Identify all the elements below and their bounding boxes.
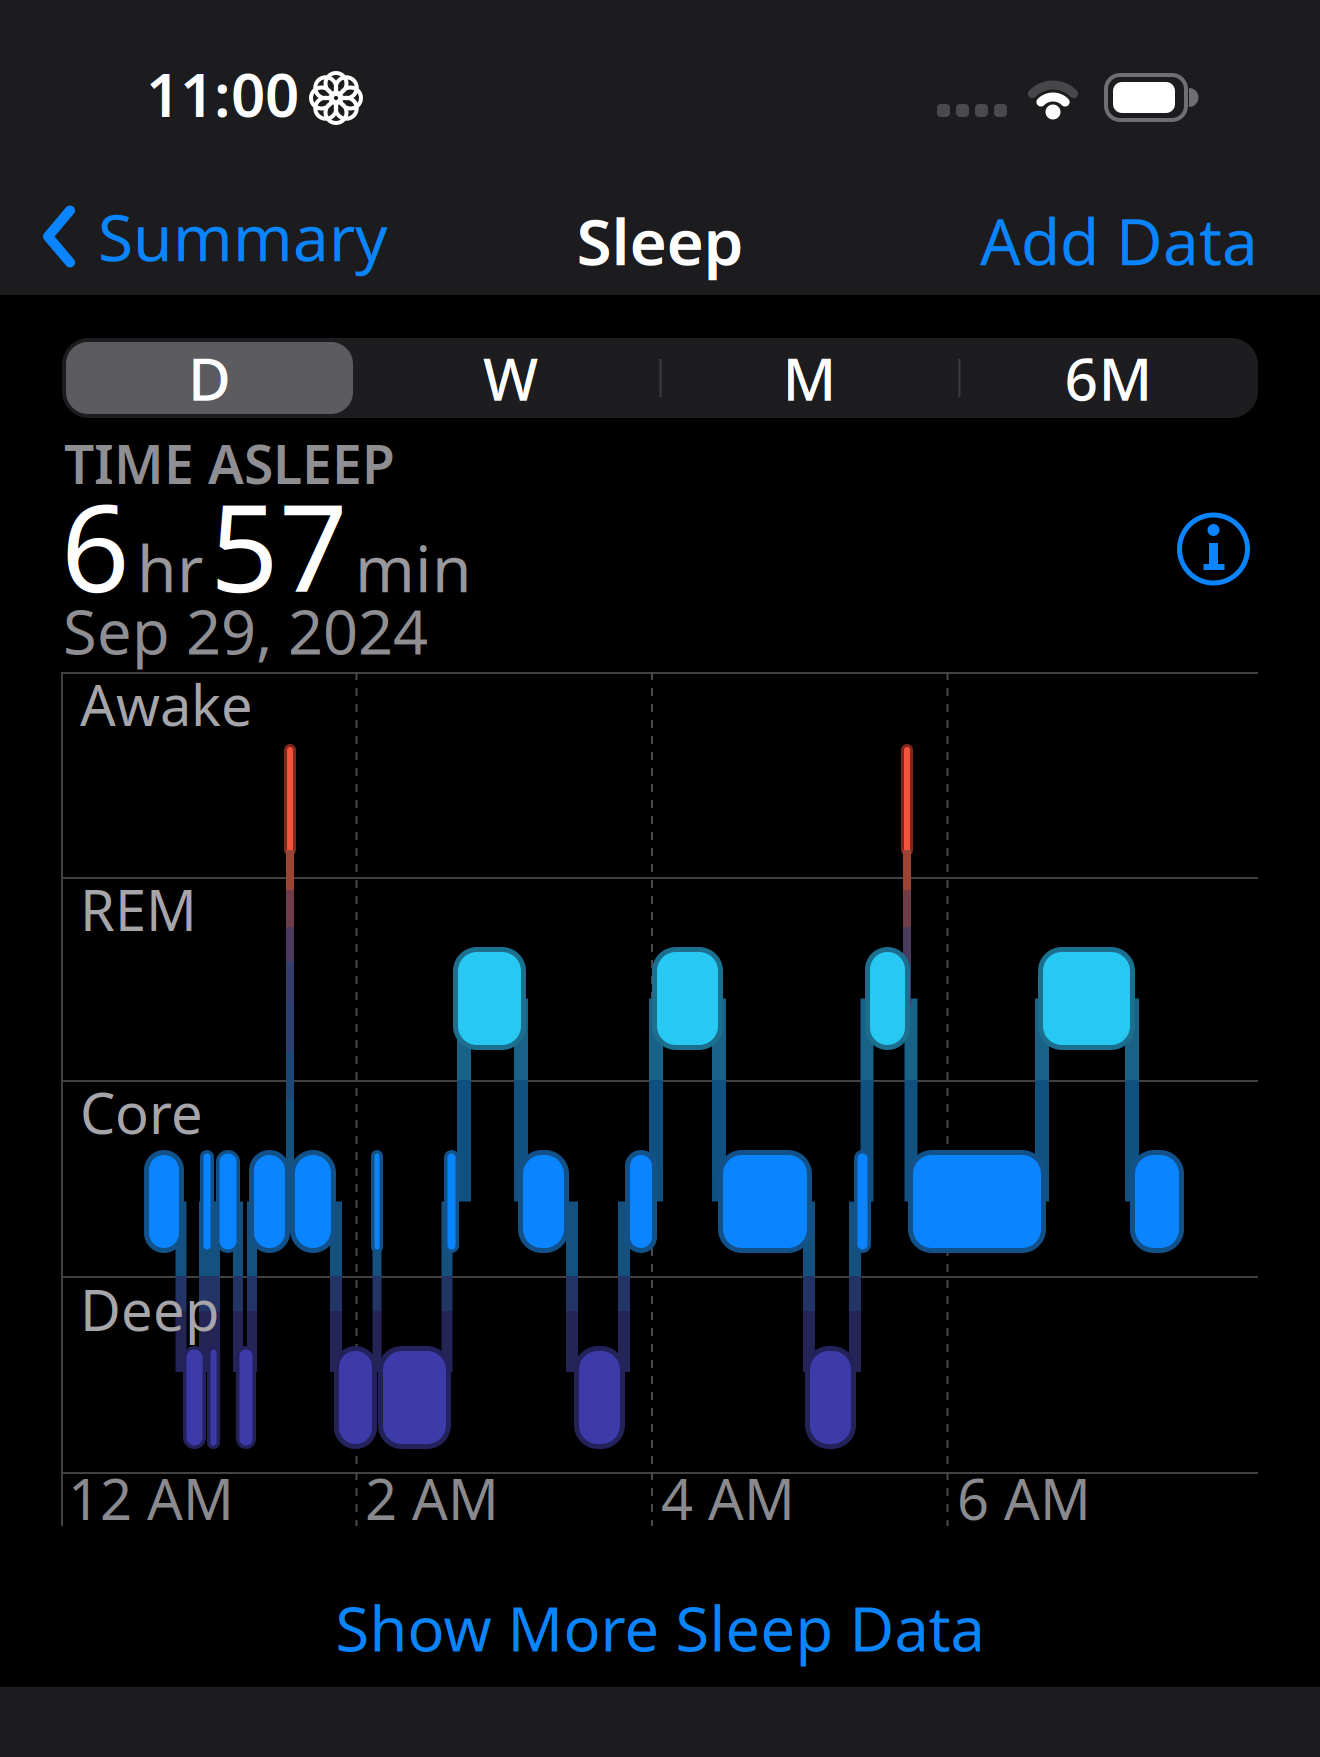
staticText: W — [483, 339, 538, 417]
staticText: hr — [137, 525, 203, 610]
staticText: Show More Sleep Data — [335, 1587, 984, 1668]
staticText: 6M — [1064, 339, 1152, 417]
staticText: 11:00 — [146, 54, 299, 134]
staticText: TIME ASLEEP — [64, 428, 395, 499]
staticText: 6 — [61, 466, 130, 625]
button[interactable]: Add Data — [980, 198, 1258, 283]
button[interactable] — [1173, 509, 1253, 589]
button[interactable]: Summary — [42, 194, 388, 279]
staticText: Sep 29, 2024 — [63, 590, 428, 671]
button[interactable]: D — [66, 342, 353, 414]
staticText: Awake — [80, 667, 253, 741]
staticText: 57 — [210, 466, 348, 625]
button[interactable]: W — [361, 338, 660, 418]
button[interactable]: M — [660, 338, 959, 418]
staticText: Core — [80, 1075, 203, 1149]
staticText: M — [782, 339, 836, 417]
staticText: 4 AM — [661, 1461, 795, 1535]
staticText: min — [355, 525, 472, 610]
staticText: Summary — [98, 194, 388, 279]
staticText: 6 AM — [957, 1461, 1091, 1535]
staticText: D — [188, 339, 231, 417]
staticText: Deep — [80, 1272, 219, 1346]
staticText: Add Data — [980, 198, 1258, 283]
staticText: Sleep — [576, 198, 743, 283]
button[interactable]: Show More Sleep Data — [335, 1587, 984, 1668]
staticText: 12 AM — [68, 1461, 234, 1535]
staticText: 2 AM — [365, 1461, 499, 1535]
button[interactable]: 6M — [959, 338, 1258, 418]
staticText: REM — [80, 872, 197, 946]
